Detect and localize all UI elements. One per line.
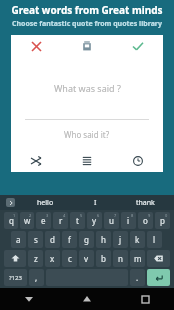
button[interactable]: f: [62, 231, 77, 248]
staticText: c: [68, 253, 72, 264]
staticText: .: [136, 272, 139, 283]
staticText: ,: [35, 272, 38, 283]
staticText: What was said ?: [54, 82, 121, 94]
button[interactable]: c: [62, 250, 77, 267]
button[interactable]: Confirm: [112, 35, 163, 57]
staticText: 2: [29, 213, 32, 218]
button[interactable]: o: [138, 212, 153, 229]
staticText: e: [41, 215, 46, 226]
button[interactable]: u: [104, 212, 119, 229]
button[interactable]: m: [130, 250, 145, 267]
button[interactable]: z: [28, 250, 43, 267]
staticText: h: [101, 234, 106, 245]
button[interactable]: q: [4, 212, 18, 229]
staticText: x: [50, 253, 55, 264]
button[interactable]: a: [11, 231, 26, 248]
staticText: g: [84, 234, 89, 245]
button[interactable]: hello: [20, 195, 70, 210]
button[interactable]: n: [113, 250, 128, 267]
button[interactable]: Recents: [116, 288, 174, 310]
button[interactable]: .: [130, 269, 145, 286]
staticText: Great words from Great minds: [0, 3, 174, 17]
staticText: v: [84, 253, 89, 264]
button[interactable]: y: [87, 212, 102, 229]
button[interactable]: w: [20, 212, 34, 229]
staticText: z: [34, 253, 38, 264]
button[interactable]: g: [79, 231, 94, 248]
button[interactable]: Home: [58, 288, 116, 310]
button[interactable]: Shuffle: [11, 150, 61, 172]
staticText: o: [143, 215, 148, 226]
button[interactable]: e: [36, 212, 51, 229]
button[interactable]: d: [45, 231, 60, 248]
button[interactable]: t: [70, 212, 85, 229]
button[interactable]: Key: [147, 250, 170, 267]
staticText: r: [59, 215, 63, 226]
staticText: y: [92, 215, 97, 226]
staticText: 8: [131, 213, 134, 218]
staticText: b: [101, 253, 106, 264]
button[interactable]: h: [96, 231, 111, 248]
button[interactable]: Delete: [61, 35, 112, 57]
button[interactable]: i: [121, 212, 136, 229]
staticText: l: [153, 234, 156, 245]
button[interactable]: b: [96, 250, 111, 267]
staticText: 0: [165, 213, 168, 218]
button[interactable]: j: [113, 231, 128, 248]
button[interactable]: s: [28, 231, 43, 248]
button[interactable]: ?123: [4, 269, 27, 286]
button[interactable]: r: [53, 212, 68, 229]
staticText: 7: [114, 213, 117, 218]
staticText: 9: [148, 213, 151, 218]
staticText: I: [94, 198, 97, 208]
staticText: thank: [136, 198, 155, 208]
staticText: k: [135, 234, 140, 245]
button[interactable]: List: [61, 150, 112, 172]
staticText: 1: [13, 213, 16, 218]
staticText: n: [118, 253, 123, 264]
button[interactable]: What was said ?: [11, 57, 163, 119]
staticText: w: [24, 215, 31, 226]
staticText: Who said it?: [64, 129, 110, 140]
button[interactable]: k: [130, 231, 145, 248]
staticText: hello: [37, 198, 54, 208]
button[interactable]: I: [70, 195, 120, 210]
staticText: d: [50, 234, 55, 245]
button[interactable]: Enter: [147, 269, 170, 286]
staticText: t: [76, 215, 79, 226]
staticText: 4: [63, 213, 66, 218]
staticText: 6: [97, 213, 100, 218]
button[interactable]: l: [147, 231, 162, 248]
staticText: Choose fantastic quote from quotes libra…: [0, 19, 174, 29]
staticText: a: [16, 234, 21, 245]
staticText: j: [119, 234, 122, 245]
button[interactable]: p: [155, 212, 170, 229]
staticText: q: [9, 215, 14, 226]
button[interactable]: Cancel: [11, 35, 61, 57]
button[interactable]: thank: [120, 195, 170, 210]
staticText: 5: [80, 213, 83, 218]
staticText: f: [68, 234, 71, 245]
button[interactable]: History: [112, 150, 163, 172]
staticText: p: [160, 215, 165, 226]
staticText: i: [127, 215, 130, 226]
button[interactable]: Who said it?: [11, 120, 163, 148]
button[interactable]: ,: [29, 269, 44, 286]
staticText: s: [34, 234, 38, 245]
button[interactable]: x: [45, 250, 60, 267]
button[interactable]: Back: [0, 288, 58, 310]
button[interactable]: More suggestions: [0, 195, 20, 210]
staticText: ?123: [9, 274, 22, 282]
button[interactable]: Key: [4, 250, 26, 267]
button[interactable]: v: [79, 250, 94, 267]
staticText: 3: [46, 213, 49, 218]
staticText: u: [109, 215, 114, 226]
staticText: m: [134, 253, 142, 264]
